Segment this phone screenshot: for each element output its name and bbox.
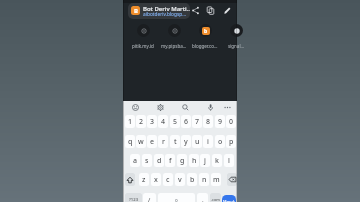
- staticText: n: [202, 175, 207, 185]
- button[interactable]: f: [165, 154, 175, 167]
- staticText: x: [154, 175, 158, 185]
- button[interactable]: [221, 101, 234, 114]
- staticText: Masuk: [223, 199, 235, 202]
- button[interactable]: [129, 101, 142, 114]
- button[interactable]: [179, 101, 192, 114]
- staticText: .com: [211, 197, 220, 202]
- button[interactable]: [166, 22, 182, 50]
- button[interactable]: 3: [147, 115, 157, 128]
- staticText: 2: [139, 117, 144, 127]
- button[interactable]: h: [189, 154, 199, 167]
- button[interactable]: v: [175, 173, 185, 186]
- staticText: 3: [150, 117, 155, 127]
- button[interactable]: 7: [192, 115, 202, 128]
- button[interactable]: e: [147, 135, 157, 148]
- staticText: pitik.my.id: [132, 43, 154, 49]
- button[interactable]: j: [200, 154, 210, 167]
- button[interactable]: y: [181, 135, 191, 148]
- button[interactable]: o: [215, 135, 225, 148]
- button[interactable]: .: [197, 193, 208, 202]
- button[interactable]: [228, 22, 244, 50]
- staticText: 7: [195, 117, 200, 127]
- staticText: g: [180, 156, 185, 166]
- button[interactable]: [125, 173, 135, 186]
- button[interactable]: 6: [181, 115, 191, 128]
- staticText: blogger.co...: [192, 43, 218, 49]
- button[interactable]: q: [125, 135, 135, 148]
- staticText: Bot Deriv Marti...: [143, 5, 190, 13]
- button[interactable]: b: [187, 173, 197, 186]
- button[interactable]: d: [154, 154, 164, 167]
- staticText: y: [184, 137, 188, 147]
- button[interactable]: 1: [125, 115, 135, 128]
- button[interactable]: 9: [215, 115, 225, 128]
- staticText: aibotderiv.blogsp...: [143, 11, 187, 18]
- button[interactable]: w: [136, 135, 146, 148]
- staticText: 1: [128, 117, 133, 127]
- staticText: /: [148, 196, 151, 202]
- staticText: c: [166, 175, 170, 185]
- button[interactable]: 4: [158, 115, 168, 128]
- staticText: q: [128, 137, 133, 147]
- button[interactable]: [223, 6, 232, 15]
- staticText: u: [195, 137, 200, 147]
- staticText: o: [218, 137, 223, 147]
- button[interactable]: m: [211, 173, 221, 186]
- button[interactable]: b: [197, 22, 213, 50]
- button[interactable]: /: [143, 193, 156, 202]
- staticText: a: [133, 156, 138, 166]
- staticText: ?123: [129, 197, 139, 202]
- staticText: B: [134, 7, 138, 15]
- staticText: s: [145, 156, 149, 166]
- staticText: .: [202, 196, 204, 202]
- button[interactable]: [135, 22, 151, 50]
- button[interactable]: l: [224, 154, 234, 167]
- staticText: 6: [184, 117, 189, 127]
- button[interactable]: ?123: [125, 193, 142, 202]
- button[interactable]: p: [226, 135, 236, 148]
- staticText: t: [174, 137, 177, 147]
- staticText: d: [157, 156, 162, 166]
- staticText: i: [207, 137, 209, 147]
- button[interactable]: s: [142, 154, 152, 167]
- button[interactable]: x: [151, 173, 161, 186]
- button[interactable]: g: [177, 154, 187, 167]
- staticText: z: [142, 175, 146, 185]
- staticText: signal...: [228, 43, 245, 49]
- staticText: my.pipsba...: [161, 43, 187, 49]
- button[interactable]: t: [170, 135, 180, 148]
- button[interactable]: k: [212, 154, 222, 167]
- button[interactable]: a: [130, 154, 140, 167]
- button[interactable]: 5: [170, 115, 180, 128]
- staticText: j: [204, 156, 206, 166]
- button[interactable]: B: [128, 3, 190, 19]
- staticText: m: [213, 175, 220, 185]
- staticText: b: [190, 175, 195, 185]
- staticText: f: [169, 156, 172, 166]
- button[interactable]: [227, 173, 237, 186]
- button[interactable]: 0: [226, 115, 236, 128]
- button[interactable]: [204, 101, 217, 114]
- button[interactable]: o: [158, 193, 195, 202]
- staticText: 5: [173, 117, 178, 127]
- button[interactable]: c: [163, 173, 173, 186]
- button[interactable]: [154, 101, 167, 114]
- button[interactable]: 8: [203, 115, 213, 128]
- staticText: 0: [229, 117, 234, 127]
- staticText: b: [204, 28, 208, 35]
- button[interactable]: i: [203, 135, 213, 148]
- button[interactable]: [191, 6, 200, 15]
- staticText: 9: [218, 117, 223, 127]
- button[interactable]: Masuk: [222, 195, 236, 202]
- button[interactable]: n: [199, 173, 209, 186]
- staticText: e: [150, 137, 155, 147]
- staticText: v: [178, 175, 182, 185]
- button[interactable]: z: [139, 173, 149, 186]
- button[interactable]: u: [192, 135, 202, 148]
- button[interactable]: r: [158, 135, 168, 148]
- button[interactable]: [206, 6, 215, 15]
- button[interactable]: .com: [210, 193, 221, 202]
- button[interactable]: 2: [136, 115, 146, 128]
- staticText: w: [138, 137, 144, 147]
- staticText: o: [175, 197, 178, 202]
